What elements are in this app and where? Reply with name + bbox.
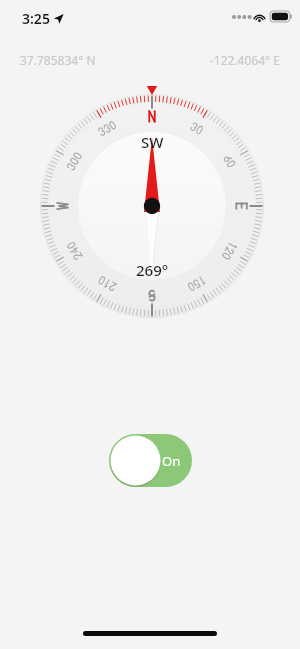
button[interactable]: Toggle, On (109, 434, 192, 487)
staticText: SW (141, 132, 164, 152)
staticText: -122.4064° E (209, 52, 280, 68)
button[interactable]: Compass dial (40, 94, 264, 318)
staticText: On (162, 452, 181, 470)
staticText: 3:25 (22, 9, 50, 28)
staticText: 269° (136, 260, 169, 280)
staticText: 37.785834° N (20, 52, 96, 68)
